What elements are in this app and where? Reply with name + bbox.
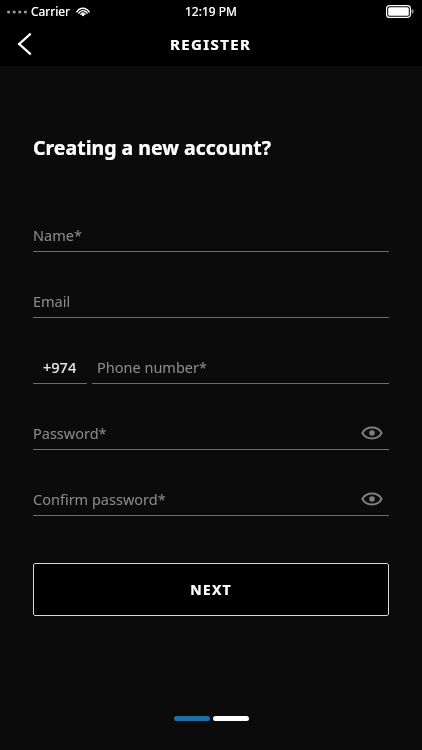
button[interactable]: Phone number* <box>92 351 389 383</box>
staticText: Email <box>33 291 71 311</box>
button[interactable]: Page 1 <box>174 716 210 721</box>
button[interactable]: +974 <box>33 351 87 383</box>
staticText: Creating a new account? <box>33 134 272 161</box>
button[interactable]: Confirm password* <box>33 483 389 515</box>
staticText: +974 <box>43 357 77 377</box>
staticText: Password* <box>33 423 107 443</box>
button[interactable]: Name* <box>33 219 389 251</box>
button[interactable]: Show password <box>355 417 389 449</box>
staticText: NEXT <box>190 580 232 599</box>
staticText: Phone number* <box>97 357 207 377</box>
staticText: 12:19 PM <box>185 3 237 19</box>
button[interactable]: Back <box>0 22 48 66</box>
staticText: REGISTER <box>170 34 252 54</box>
staticText: Confirm password* <box>33 489 166 509</box>
button[interactable]: Page 2 <box>213 716 249 721</box>
button[interactable]: Email <box>33 285 389 317</box>
button[interactable]: Show confirm password <box>355 483 389 515</box>
staticText: Carrier <box>31 3 71 19</box>
staticText: Name* <box>33 225 82 245</box>
button[interactable]: Password* <box>33 417 389 449</box>
button[interactable]: NEXT <box>33 563 389 616</box>
